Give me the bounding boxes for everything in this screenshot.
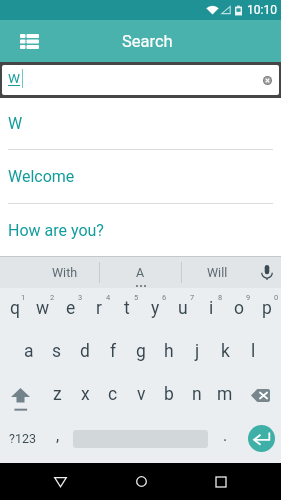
- button[interactable]: d: [71, 331, 99, 374]
- button[interactable]: 9: [225, 288, 253, 331]
- staticText: 5: [134, 293, 139, 302]
- staticText: m: [217, 384, 233, 405]
- staticText: 10:10: [247, 3, 277, 17]
- staticText: .: [223, 426, 228, 445]
- button[interactable]: s: [43, 331, 71, 374]
- button[interactable]: Voice input: [253, 257, 281, 288]
- button[interactable]: 7: [169, 288, 197, 331]
- button[interactable]: x: [71, 374, 99, 417]
- staticText: 9: [246, 293, 251, 302]
- button[interactable]: ?123: [0, 417, 44, 460]
- button[interactable]: v: [127, 374, 155, 417]
- button[interactable]: z: [43, 374, 71, 417]
- button[interactable]: f: [99, 331, 127, 374]
- staticText: y: [151, 298, 160, 319]
- staticText: s: [52, 341, 62, 362]
- button[interactable]: Recents: [201, 463, 241, 500]
- button[interactable]: m: [211, 374, 239, 417]
- staticText: h: [164, 341, 174, 362]
- button[interactable]: k: [211, 331, 239, 374]
- staticText: ?123: [9, 431, 36, 446]
- staticText: l: [251, 341, 256, 362]
- button[interactable]: a: [15, 331, 43, 374]
- staticText: 2: [50, 293, 55, 302]
- staticText: 6: [162, 293, 167, 302]
- button[interactable]: 3: [57, 288, 85, 331]
- button[interactable]: Open navigation menu: [14, 26, 44, 56]
- button[interactable]: A: [100, 257, 181, 288]
- staticText: A: [136, 265, 145, 280]
- staticText: q: [10, 298, 20, 319]
- staticText: i: [209, 298, 214, 319]
- staticText: r: [96, 298, 102, 319]
- staticText: 3: [78, 293, 83, 302]
- staticText: 4: [106, 293, 111, 302]
- button[interactable]: Backspace: [239, 374, 281, 417]
- staticText: 0: [274, 293, 279, 302]
- staticText: Search: [122, 32, 173, 51]
- button[interactable]: 8: [197, 288, 225, 331]
- staticText: x: [81, 384, 90, 405]
- button[interactable]: [72, 417, 209, 460]
- staticText: W: [8, 70, 20, 86]
- staticText: u: [178, 298, 188, 319]
- button[interactable]: l: [239, 331, 267, 374]
- button[interactable]: c: [99, 374, 127, 417]
- button[interactable]: How are you?: [0, 204, 281, 256]
- staticText: c: [108, 384, 118, 405]
- staticText: o: [234, 298, 244, 319]
- button[interactable]: W: [2, 65, 279, 95]
- button[interactable]: 0: [253, 288, 281, 331]
- button[interactable]: Shift: [0, 374, 43, 417]
- staticText: k: [221, 341, 230, 362]
- staticText: e: [66, 298, 76, 319]
- button[interactable]: Will: [182, 257, 253, 288]
- staticText: With: [52, 265, 78, 280]
- button[interactable]: 1: [0, 288, 29, 331]
- button[interactable]: Home: [121, 463, 161, 500]
- staticText: a: [24, 341, 34, 362]
- staticText: d: [80, 341, 90, 362]
- staticText: ,: [56, 426, 60, 445]
- staticText: f: [110, 341, 117, 362]
- button[interactable]: b: [155, 374, 183, 417]
- staticText: z: [53, 384, 62, 405]
- button[interactable]: n: [183, 374, 211, 417]
- button[interactable]: 2: [29, 288, 57, 331]
- button[interactable]: Clear query: [257, 70, 277, 90]
- button[interactable]: ,: [44, 417, 72, 460]
- staticText: p: [262, 298, 272, 319]
- button[interactable]: .: [209, 417, 241, 460]
- button[interactable]: g: [127, 331, 155, 374]
- staticText: W: [8, 114, 23, 133]
- button[interactable]: h: [155, 331, 183, 374]
- button[interactable]: Back: [40, 463, 80, 500]
- staticText: t: [124, 298, 130, 319]
- button[interactable]: With: [0, 257, 99, 288]
- button[interactable]: Welcome: [0, 150, 281, 204]
- button[interactable]: 4: [85, 288, 113, 331]
- staticText: 8: [218, 293, 223, 302]
- staticText: n: [192, 384, 202, 405]
- staticText: 7: [190, 293, 195, 302]
- button[interactable]: j: [183, 331, 211, 374]
- staticText: v: [137, 384, 146, 405]
- staticText: Welcome: [8, 167, 75, 186]
- staticText: Will: [207, 265, 228, 280]
- button[interactable]: W: [0, 98, 281, 150]
- staticText: How are you?: [8, 221, 104, 240]
- staticText: g: [136, 341, 146, 362]
- button[interactable]: 6: [141, 288, 169, 331]
- staticText: b: [164, 384, 174, 405]
- staticText: w: [36, 298, 50, 319]
- button[interactable]: Enter: [241, 417, 281, 460]
- staticText: j: [195, 341, 200, 362]
- button[interactable]: 5: [113, 288, 141, 331]
- staticText: 1: [21, 293, 26, 302]
